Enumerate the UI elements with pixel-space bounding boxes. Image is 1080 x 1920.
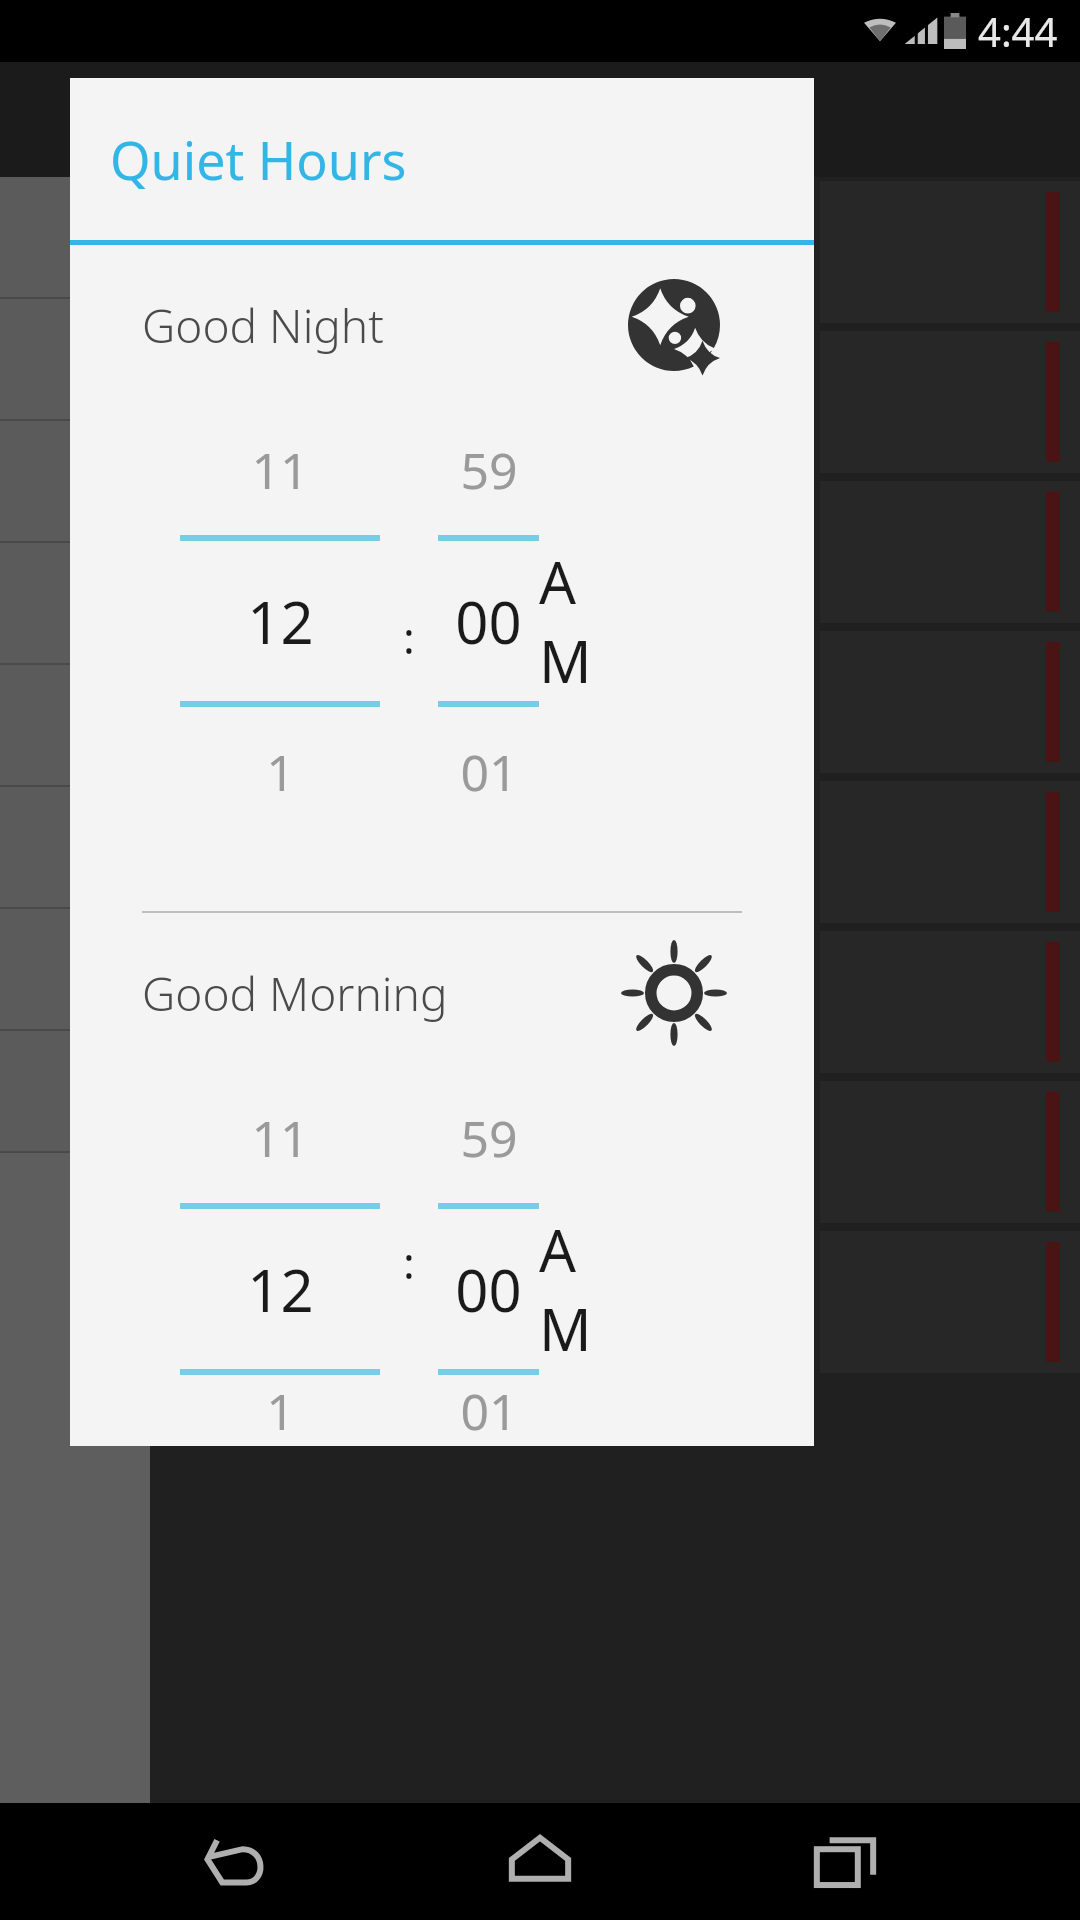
- staticText: 11: [251, 436, 309, 504]
- button[interactable]: 59: [438, 1073, 539, 1446]
- staticText: 00: [455, 582, 522, 661]
- other: Good Morning: [624, 943, 724, 1043]
- other: Good Night: [624, 275, 724, 375]
- staticText: 01: [460, 1377, 518, 1445]
- staticText: Good Morning: [142, 962, 448, 1025]
- button[interactable]: Recents: [775, 1803, 915, 1920]
- staticText: 01: [460, 738, 518, 806]
- staticText: Good Night: [142, 294, 384, 357]
- button[interactable]: Home: [470, 1803, 610, 1920]
- button[interactable]: 59: [438, 405, 539, 865]
- staticText: 11: [251, 1104, 309, 1172]
- button[interactable]: Good Night: [70, 245, 814, 405]
- staticText: 59: [460, 1104, 518, 1172]
- staticText: 00: [455, 1250, 522, 1329]
- staticText: :: [403, 607, 415, 667]
- staticText: 12: [247, 582, 314, 661]
- button[interactable]: Good Morning: [70, 913, 814, 1073]
- staticText: 1: [266, 738, 295, 806]
- staticText: Quiet Hours: [110, 124, 407, 195]
- button[interactable]: 11: [180, 405, 380, 865]
- staticText: 4:44: [978, 4, 1058, 58]
- staticText: 59: [460, 436, 518, 504]
- staticText: :: [403, 1232, 415, 1292]
- button[interactable]: 11: [180, 1073, 380, 1446]
- staticText: 1: [266, 1377, 295, 1445]
- staticText: 12: [247, 1250, 314, 1329]
- button[interactable]: Back: [165, 1803, 305, 1920]
